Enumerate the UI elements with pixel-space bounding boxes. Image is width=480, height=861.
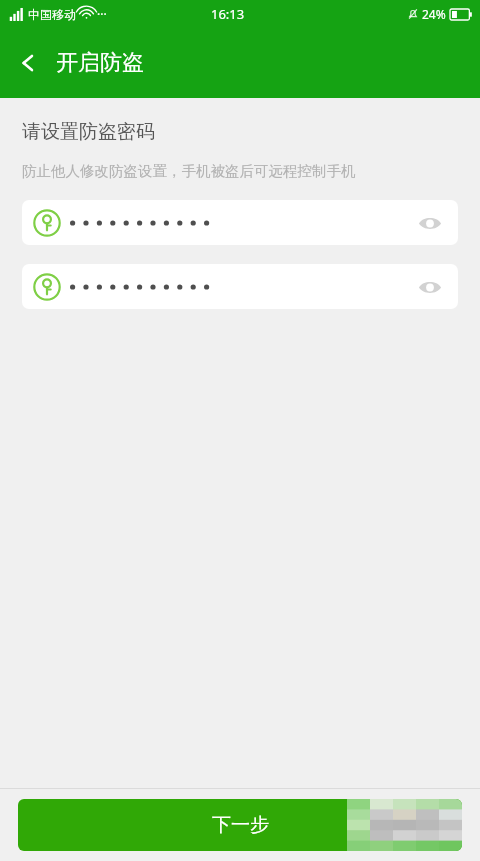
- staticText: 中国移动: [28, 7, 76, 22]
- button[interactable]: Show password: [413, 270, 447, 304]
- button[interactable]: Show password: [22, 200, 458, 245]
- staticText: 16:13: [211, 5, 245, 23]
- staticText: 下一步: [212, 813, 269, 837]
- staticText: 请设置防盗密码: [22, 120, 155, 144]
- staticText: 24%: [422, 6, 446, 22]
- button[interactable]: 下一步: [18, 799, 462, 851]
- button[interactable]: Show password: [413, 206, 447, 240]
- staticText: ···: [97, 6, 107, 22]
- button[interactable]: Show password: [22, 264, 458, 309]
- staticText: 防止他人修改防盗设置，手机被盗后可远程控制手机: [22, 162, 356, 180]
- button[interactable]: Back: [0, 35, 56, 91]
- staticText: 开启防盗: [56, 49, 144, 77]
